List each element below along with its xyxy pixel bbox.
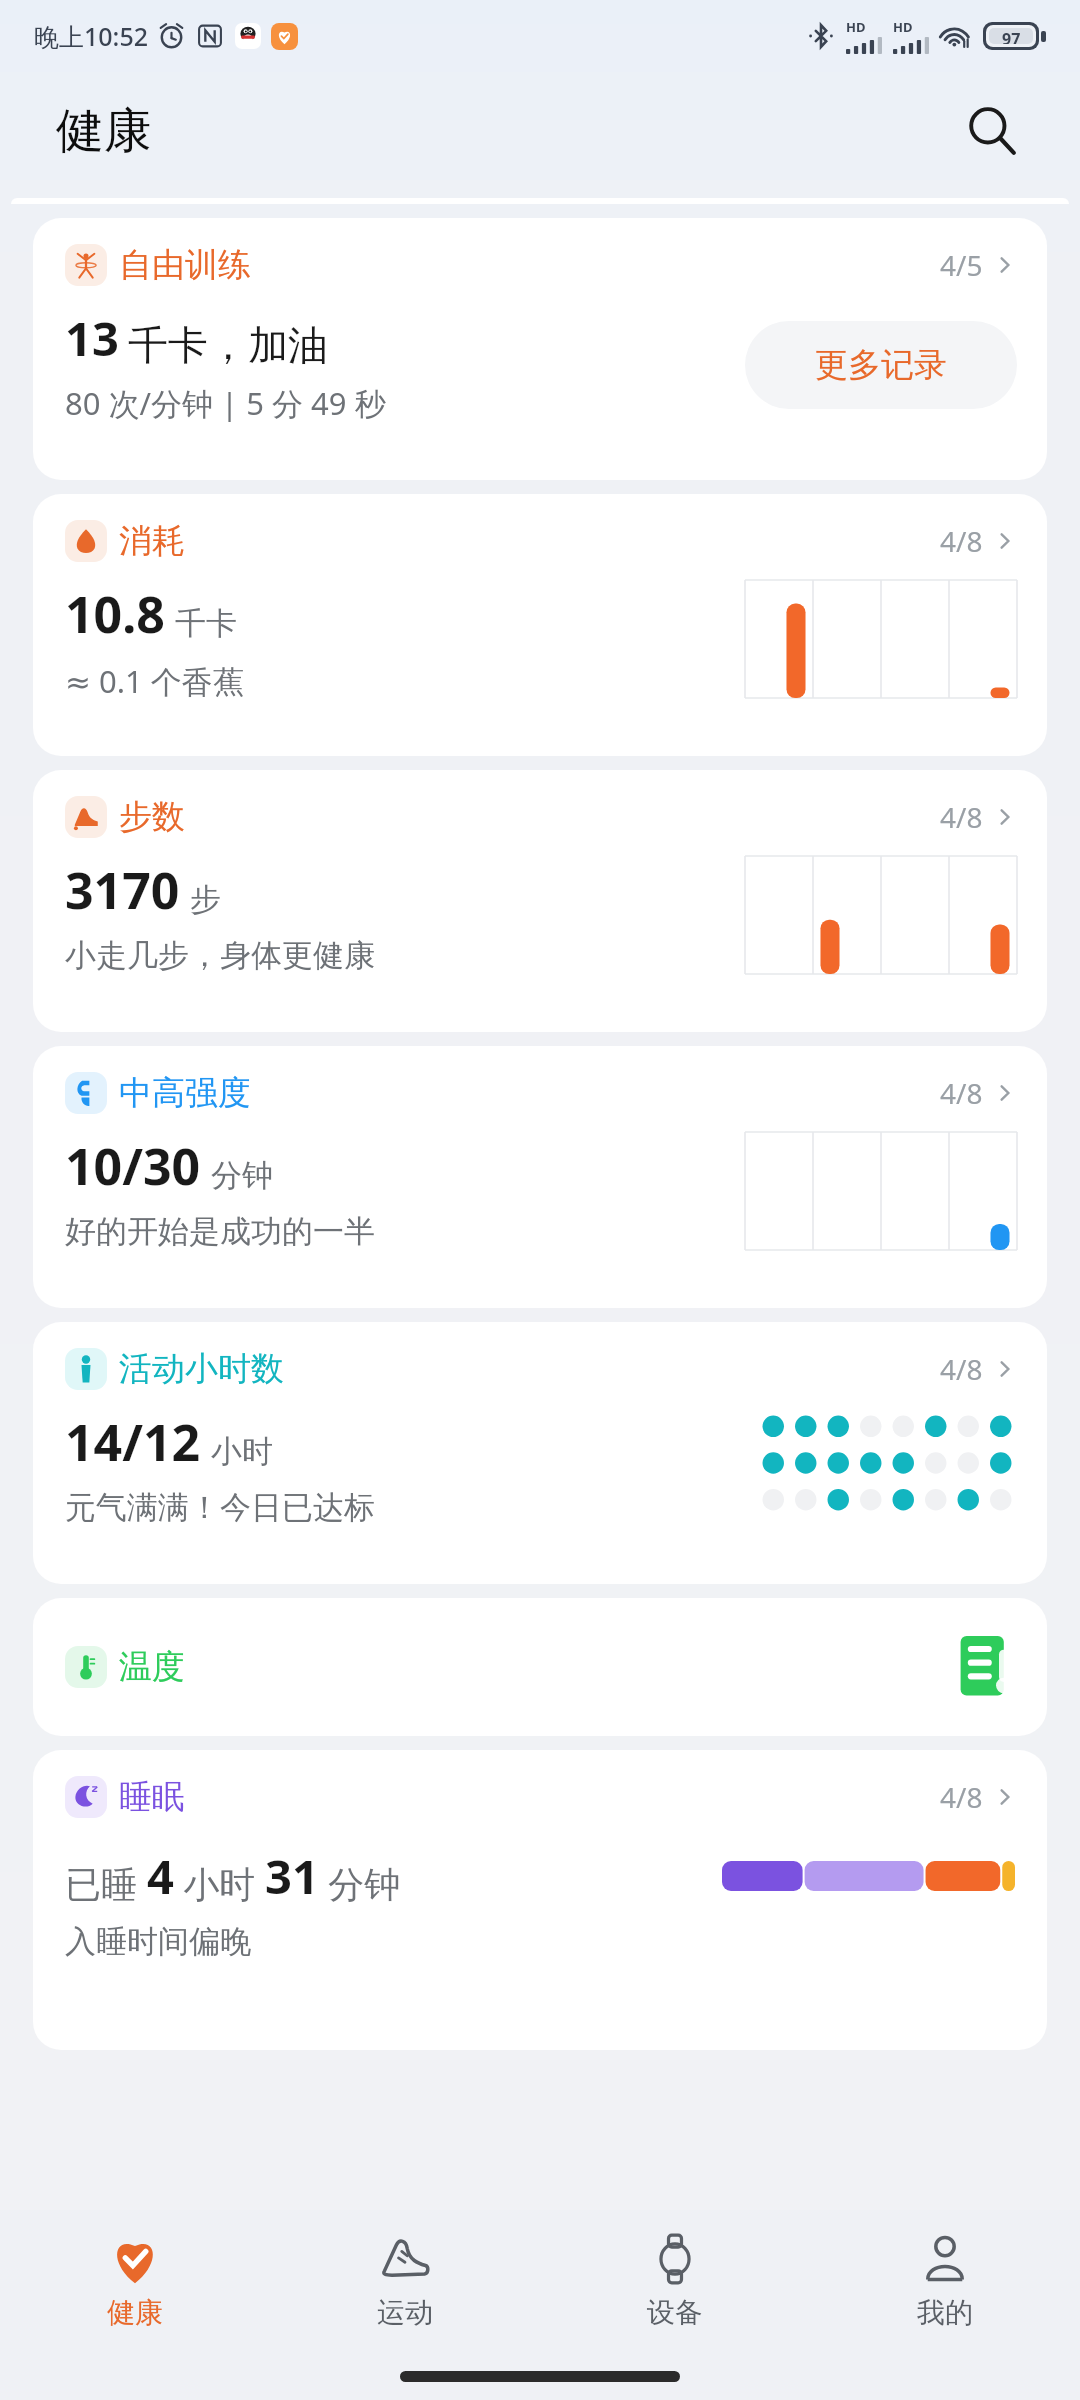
staticText: 小时: [211, 1432, 273, 1471]
button[interactable]: 更多记录: [745, 321, 1017, 409]
staticText: 设备: [647, 2295, 703, 2330]
staticText: 分钟: [211, 1156, 273, 1195]
staticText: 80 次/分钟 | 5 分 49 秒: [65, 382, 386, 424]
staticText: 睡眠: [119, 1776, 185, 1818]
staticText: 健康: [56, 101, 152, 161]
staticText: 已睡: [65, 1859, 147, 1908]
staticText: 步: [190, 880, 221, 919]
button[interactable]: 自由训练: [33, 218, 1047, 480]
button[interactable]: 中高强度: [33, 1046, 1047, 1308]
staticText: 千卡，加油: [128, 320, 328, 370]
staticText: 4/8: [940, 1778, 983, 1816]
button[interactable]: 睡眠: [33, 1750, 1047, 2050]
staticText: HD: [893, 18, 913, 36]
staticText: 更多记录: [815, 344, 947, 386]
staticText: 4/5: [940, 246, 983, 284]
staticText: 步数: [119, 796, 185, 838]
button[interactable]: 温度: [33, 1598, 1047, 1736]
staticText: 好的开始是成功的一半: [65, 1212, 375, 1251]
staticText: 4/8: [940, 522, 983, 560]
staticText: 自由训练: [119, 244, 251, 286]
button[interactable]: 运动: [270, 2210, 540, 2352]
staticText: 4/8: [940, 1350, 983, 1388]
staticText: 晚上10:52: [34, 19, 149, 53]
button[interactable]: 活动小时数: [33, 1322, 1047, 1584]
staticText: 14/12: [65, 1408, 201, 1476]
staticText: 13: [65, 306, 119, 370]
staticText: 入睡时间偏晚: [65, 1922, 251, 1961]
staticText: 小走几步，身体更健康: [65, 936, 375, 975]
staticText: 3170: [65, 856, 180, 924]
staticText: 我的: [917, 2295, 973, 2330]
button[interactable]: 步数: [33, 770, 1047, 1032]
staticText: 小时: [174, 1859, 265, 1908]
staticText: 10/30: [65, 1132, 201, 1200]
staticText: ≈ 0.1 个香蕉: [65, 660, 244, 702]
staticText: 消耗: [119, 520, 185, 562]
button[interactable]: 搜索: [954, 93, 1030, 169]
staticText: 中高强度: [119, 1072, 251, 1114]
staticText: 4: [147, 1844, 174, 1908]
button[interactable]: 健康: [0, 2210, 270, 2352]
staticText: 温度: [119, 1646, 185, 1688]
staticText: 4/8: [940, 1074, 983, 1112]
staticText: 31: [265, 1844, 319, 1908]
staticText: HD: [846, 18, 866, 36]
button[interactable]: 我的: [810, 2210, 1080, 2352]
button[interactable]: 消耗: [33, 494, 1047, 756]
staticText: 千卡: [175, 604, 237, 643]
staticText: 97: [1002, 28, 1021, 44]
staticText: 分钟: [319, 1859, 401, 1908]
staticText: 元气满满！今日已达标: [65, 1488, 375, 1527]
staticText: 运动: [377, 2295, 433, 2330]
staticText: 活动小时数: [119, 1348, 284, 1390]
staticText: 健康: [107, 2295, 163, 2330]
staticText: 4/8: [940, 798, 983, 836]
staticText: 10.8: [65, 580, 165, 648]
button[interactable]: 设备: [540, 2210, 810, 2352]
